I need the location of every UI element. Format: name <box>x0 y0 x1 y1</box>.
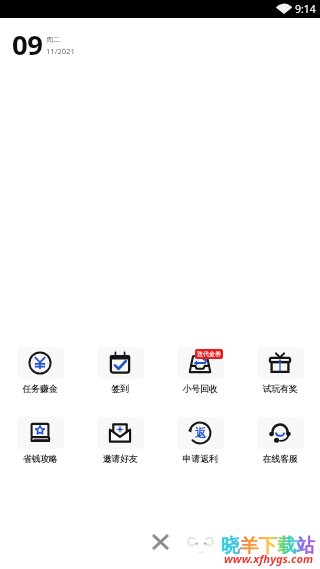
staticText: 邀请好友 <box>102 454 138 465</box>
staticText: www.xfhygs.com <box>224 551 314 566</box>
staticText: 9:14 <box>295 2 316 16</box>
button[interactable]: 省钱攻略 <box>0 421 80 465</box>
button[interactable]: 返 <box>160 421 240 465</box>
button[interactable]: 邀请好友 <box>80 421 160 465</box>
button[interactable]: 签到 <box>80 351 160 395</box>
staticText: 签到 <box>111 384 129 395</box>
staticText: 试玩有奖 <box>262 384 298 395</box>
staticText: 晓羊下载站 <box>221 534 315 558</box>
staticText: 11/2021 <box>46 46 75 56</box>
button[interactable]: 试玩有奖 <box>240 351 320 395</box>
staticText: 任务赚金 <box>22 384 58 395</box>
button[interactable]: Close <box>149 530 172 553</box>
staticText: 周二 <box>46 35 60 44</box>
button[interactable]: 任务赚金 <box>0 351 80 395</box>
staticText: 省钱攻略 <box>22 454 58 465</box>
button[interactable]: 小号回收 <box>160 351 240 395</box>
staticText: 返 <box>195 426 207 440</box>
staticText: 在线客服 <box>262 454 298 465</box>
staticText: 小号回收 <box>182 384 218 395</box>
button[interactable]: 在线客服 <box>240 421 320 465</box>
staticText: 送代金券 <box>197 350 221 358</box>
staticText: 申请返利 <box>182 454 218 465</box>
staticText: 09 <box>12 26 43 63</box>
